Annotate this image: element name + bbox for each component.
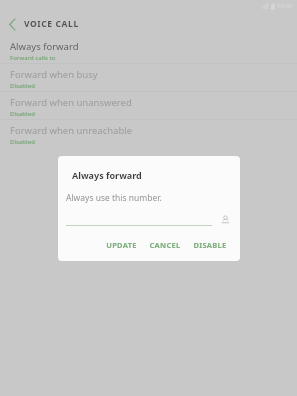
button[interactable]: Forward when unreachable (0, 120, 297, 147)
button[interactable]: UPDATE (100, 237, 143, 253)
staticText: Forward when unreachable (10, 124, 133, 137)
staticText: DISABLE (193, 240, 227, 250)
button[interactable]: Select contact (219, 213, 232, 226)
staticText: 10:00 (277, 2, 293, 10)
button[interactable] (66, 218, 212, 226)
staticText: Always forward (10, 40, 79, 53)
staticText: Forward when busy (10, 68, 98, 81)
staticText: Disabled (10, 82, 35, 90)
button[interactable]: Forward when busy (0, 64, 297, 91)
staticText: CANCEL (149, 240, 181, 250)
button[interactable]: CANCEL (143, 237, 187, 253)
staticText: UPDATE (106, 240, 137, 250)
button[interactable]: Back (0, 12, 24, 36)
button[interactable]: Forward when unanswered (0, 92, 297, 119)
staticText: Always use this number. (66, 192, 162, 204)
staticText: Disabled (10, 110, 35, 118)
staticText: Forward when unanswered (10, 96, 132, 109)
staticText: Disabled (10, 138, 35, 146)
staticText: Forward calls to (10, 54, 56, 62)
button[interactable]: DISABLE (187, 237, 233, 253)
staticText: VOICE CALL (24, 18, 79, 30)
staticText: Always forward (72, 169, 142, 181)
button[interactable]: Always forward (0, 36, 297, 63)
